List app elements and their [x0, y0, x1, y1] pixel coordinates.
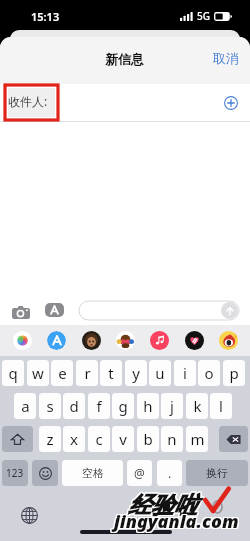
staticText: z	[46, 429, 54, 449]
staticText: 新信息	[105, 51, 144, 67]
button[interactable]: o	[198, 360, 220, 386]
staticText: 取消	[213, 50, 239, 66]
staticText: e	[58, 363, 67, 383]
staticText: a	[21, 396, 30, 416]
staticText: 经验啦	[127, 490, 196, 519]
button[interactable]: u	[149, 360, 171, 386]
staticText: jingyanla.com	[115, 508, 240, 533]
staticText: v	[119, 429, 127, 449]
staticText: 经验啦	[128, 491, 197, 520]
staticText: jingyanla.com	[115, 509, 240, 534]
button[interactable]: Add recipient	[221, 93, 241, 113]
button[interactable]: k	[186, 393, 208, 419]
button[interactable]: s	[39, 393, 61, 419]
staticText: o	[204, 363, 214, 383]
button[interactable]: Stickers	[116, 331, 135, 350]
button[interactable]: Memoji	[82, 331, 101, 350]
staticText: k	[193, 396, 202, 416]
button[interactable]: Photos	[13, 331, 32, 350]
button[interactable]: c	[88, 426, 110, 452]
button[interactable]: x	[63, 426, 85, 452]
button[interactable]: Digital Touch	[185, 331, 204, 350]
staticText: m	[190, 429, 205, 449]
button[interactable]: App Store	[47, 331, 66, 350]
staticText: jingyanla.com	[113, 508, 238, 533]
staticText: b	[143, 429, 153, 449]
staticText: 经验啦	[127, 492, 196, 521]
button[interactable]: Emoji	[32, 460, 58, 486]
button[interactable]: Shift	[2, 426, 33, 452]
button[interactable]: 换行	[186, 460, 248, 486]
button[interactable]: @	[127, 460, 152, 486]
staticText: jingyanla.com	[113, 510, 238, 535]
staticText: n	[167, 429, 177, 449]
button[interactable]: Switch keyboard	[20, 506, 38, 524]
staticText: r	[84, 363, 91, 383]
button[interactable]: Camera	[9, 301, 33, 323]
staticText: jingyanla.com	[114, 508, 239, 533]
button[interactable]: 123	[2, 460, 28, 486]
button[interactable]: j	[161, 393, 183, 419]
button[interactable]: z	[39, 426, 61, 452]
button[interactable]: 取消	[206, 46, 246, 70]
staticText: 经验啦	[129, 492, 198, 521]
staticText: f	[96, 396, 102, 416]
button[interactable]: h	[137, 393, 159, 419]
button[interactable]: Backspace	[219, 426, 248, 452]
staticText: @	[134, 465, 145, 481]
staticText: 换行	[206, 466, 228, 480]
staticText: j	[170, 396, 174, 416]
button[interactable]: e	[51, 360, 73, 386]
button[interactable]: q	[2, 360, 24, 386]
staticText: y	[132, 363, 140, 383]
button[interactable]: t	[100, 360, 122, 386]
staticText: p	[229, 363, 239, 383]
staticText: s	[46, 396, 54, 416]
staticText: h	[143, 396, 153, 416]
button[interactable]: Music	[150, 331, 169, 350]
button[interactable]: v	[112, 426, 134, 452]
staticText: g	[118, 396, 128, 416]
staticText: i	[183, 363, 187, 383]
staticText: 123	[6, 466, 24, 480]
staticText: 空格	[82, 466, 104, 480]
staticText: u	[155, 363, 165, 383]
button[interactable]: g	[112, 393, 134, 419]
staticText: 5G	[197, 9, 210, 23]
button[interactable]: Weibo	[219, 331, 238, 350]
staticText: jingyanla.com	[114, 510, 239, 535]
button[interactable]: y	[125, 360, 147, 386]
button[interactable]: i	[174, 360, 196, 386]
staticText: jingyanla.com	[113, 509, 238, 534]
button[interactable]: Send	[221, 302, 238, 319]
staticText: .	[168, 465, 172, 481]
staticText: 15:13	[31, 9, 60, 24]
button[interactable]: n	[161, 426, 183, 452]
staticText: jingyanla.com	[115, 510, 240, 535]
button[interactable]: m	[186, 426, 208, 452]
button[interactable]: r	[76, 360, 98, 386]
staticText: 经验啦	[129, 491, 198, 520]
staticText: 经验啦	[128, 490, 197, 519]
button[interactable]: f	[88, 393, 110, 419]
button[interactable]: w	[27, 360, 49, 386]
staticText: q	[8, 363, 18, 383]
staticText: 经验啦	[127, 491, 196, 520]
staticText: jingyanla.com	[114, 509, 239, 534]
staticText: t	[108, 363, 114, 383]
staticText: l	[219, 396, 223, 416]
button[interactable]: l	[210, 393, 232, 419]
staticText: w	[32, 363, 44, 383]
button[interactable]: a	[14, 393, 36, 419]
button[interactable]: 空格	[62, 460, 123, 486]
staticText: d	[69, 396, 79, 416]
staticText: x	[70, 429, 78, 449]
button[interactable]: p	[223, 360, 245, 386]
button[interactable]: b	[137, 426, 159, 452]
button[interactable]: d	[63, 393, 85, 419]
staticText: c	[95, 429, 103, 449]
staticText: 经验啦	[128, 492, 197, 521]
button[interactable]: .	[157, 460, 182, 486]
staticText: 收件人:	[8, 93, 48, 109]
button[interactable]: App Store	[45, 303, 64, 317]
